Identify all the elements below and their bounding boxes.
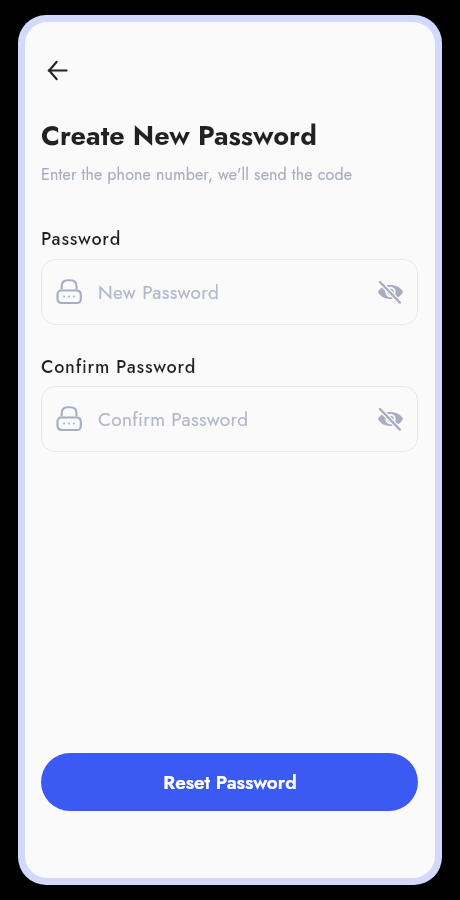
button[interactable]: Show password	[377, 277, 404, 307]
button[interactable]: Confirm Password	[41, 386, 418, 452]
staticText: Create New Password	[41, 116, 317, 155]
staticText: New Password	[98, 279, 220, 306]
staticText: Password	[41, 226, 122, 252]
staticText: Reset Password	[163, 769, 297, 796]
staticText: Enter the phone number, we'll send the c…	[41, 163, 353, 186]
button[interactable]: Show password	[377, 404, 404, 434]
button[interactable]: Back	[35, 48, 79, 92]
staticText: Confirm Password	[98, 406, 249, 433]
button[interactable]: Reset Password	[41, 753, 418, 811]
button[interactable]: New Password	[41, 259, 418, 325]
staticText: Confirm Password	[41, 354, 197, 380]
